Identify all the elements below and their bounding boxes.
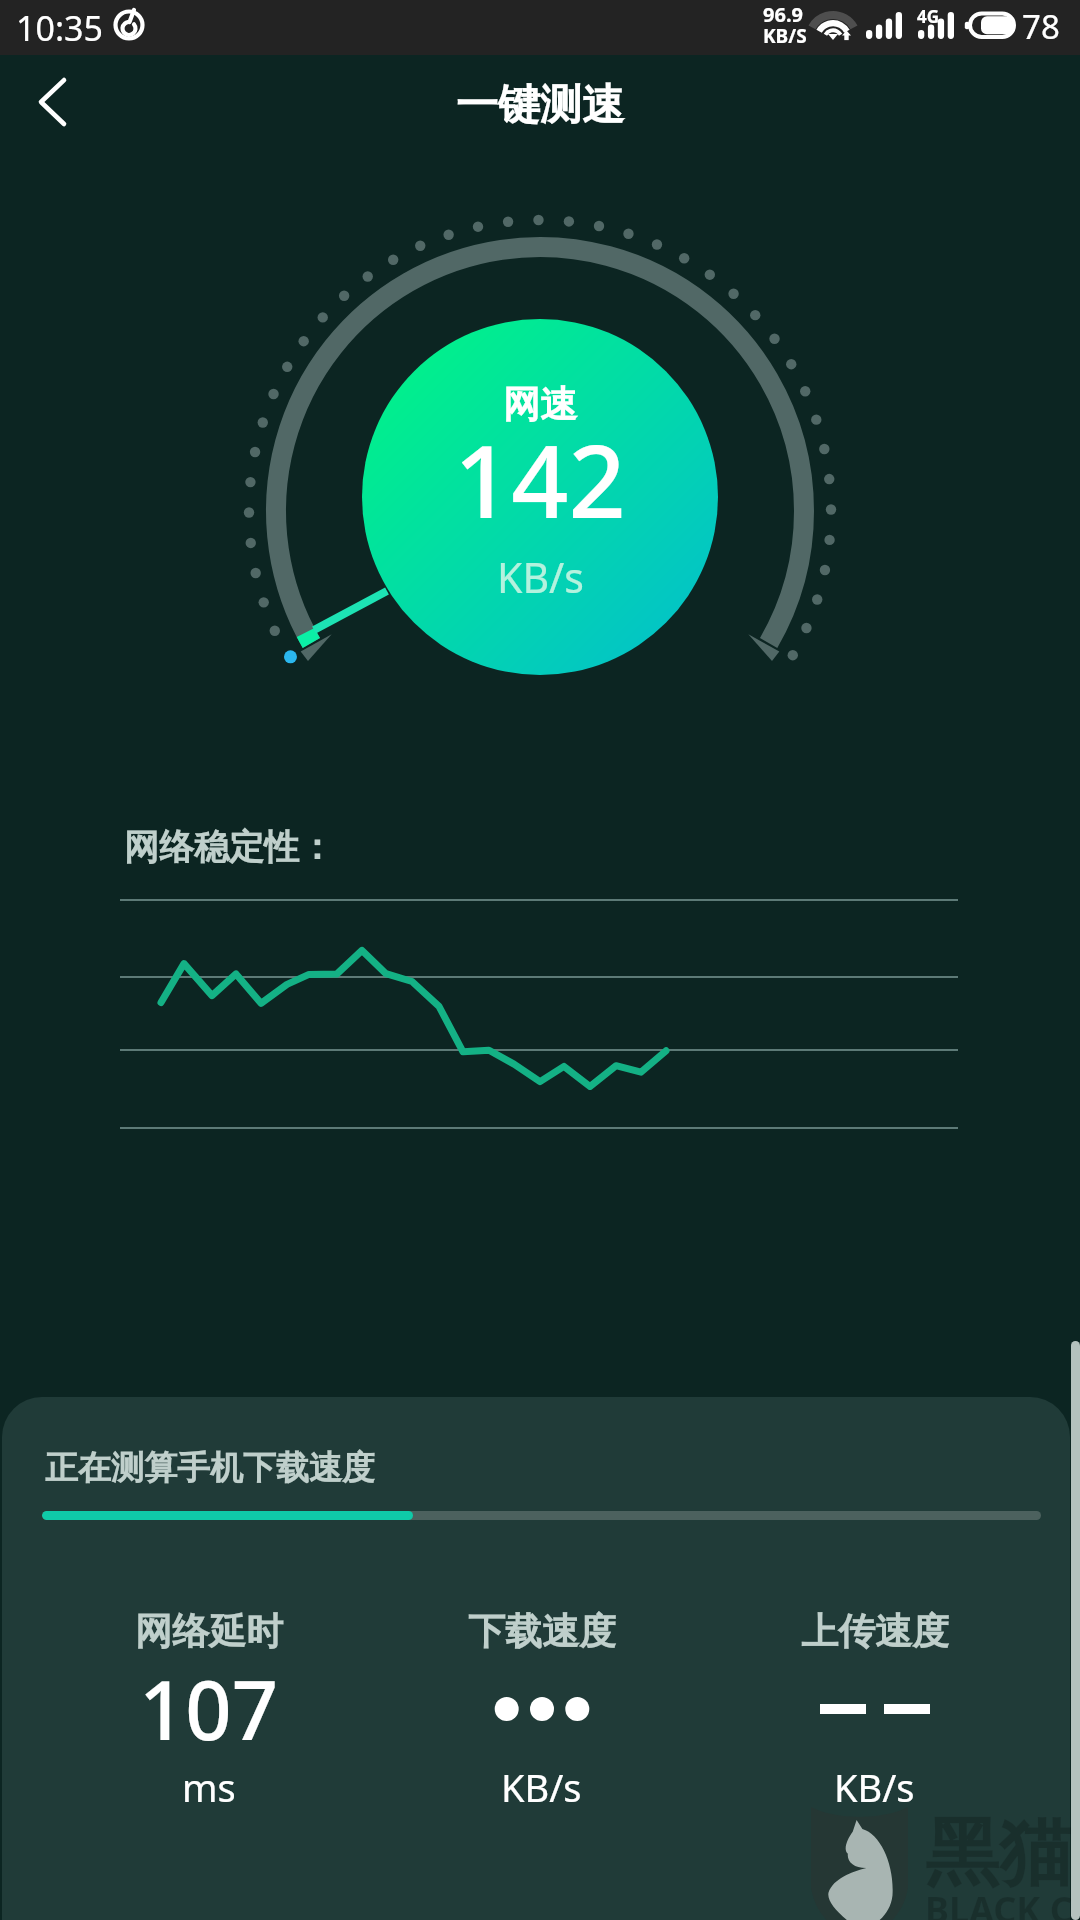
staticText: BLACK CAT [925,1885,1080,1920]
staticText: 下载速度 [468,1608,616,1655]
staticText: 网络延时 [135,1608,283,1655]
staticText: 78 [1022,4,1060,49]
staticText: 10:35 [16,5,103,51]
staticText: 正在测算手机下载速度 [45,1447,375,1489]
button[interactable]: Back [0,57,96,153]
staticText: 上传速度 [801,1608,949,1655]
staticText: 96.9 [763,1,803,28]
staticText: 142 [454,411,626,547]
staticText: KB/S [763,23,807,49]
staticText: 一键测速 [456,79,624,132]
staticText: 网络稳定性： [124,825,334,869]
staticText: KB/s [501,1761,582,1813]
staticText: 网速 [503,381,577,428]
staticText: ms [182,1761,236,1813]
staticText: 107 [139,1653,278,1763]
staticText: 黑猫 [925,1807,1073,1900]
staticText: 4G [917,5,940,28]
staticText: KB/s [834,1761,915,1813]
staticText: KB/s [497,549,584,605]
